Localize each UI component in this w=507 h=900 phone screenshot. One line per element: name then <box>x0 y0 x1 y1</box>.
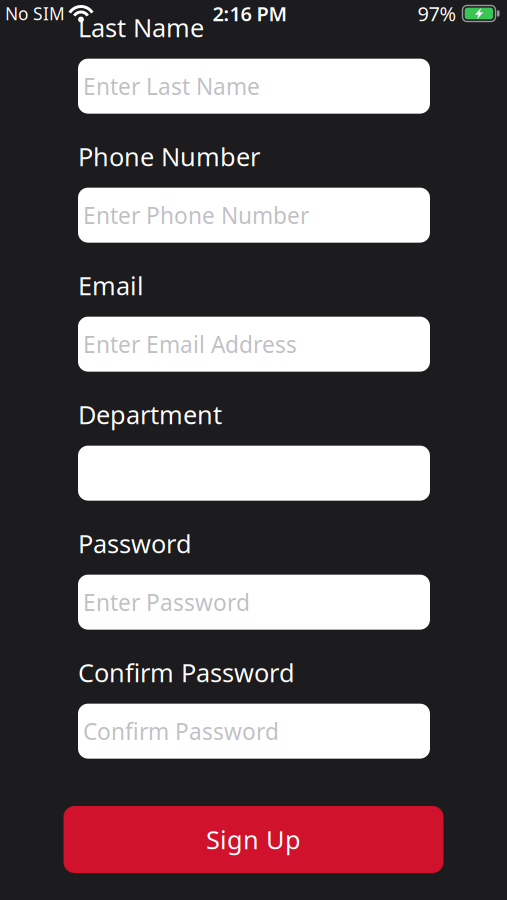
button[interactable]: Department <box>78 446 430 501</box>
staticText: Sign Up <box>206 823 301 856</box>
staticText: Phone Number <box>78 139 260 173</box>
staticText: Department <box>78 397 222 431</box>
staticText: Enter Email Address <box>83 329 297 359</box>
staticText: 97% <box>417 0 456 27</box>
staticText: Password <box>78 526 192 560</box>
button[interactable]: Sign Up <box>63 806 443 873</box>
staticText: Confirm Password <box>83 716 279 746</box>
staticText: Confirm Password <box>78 655 295 689</box>
staticText: Last Name <box>78 10 204 44</box>
staticText: Enter Last Name <box>83 71 260 101</box>
button[interactable]: Phone Number <box>78 188 430 243</box>
button[interactable]: Password <box>78 575 430 630</box>
button[interactable]: Last Name <box>78 59 430 114</box>
staticText: 2:16 PM <box>212 0 287 27</box>
button[interactable]: Email <box>78 317 430 372</box>
staticText: Enter Password <box>83 587 250 617</box>
staticText: Enter Phone Number <box>83 200 309 230</box>
staticText: No SIM <box>5 2 65 25</box>
staticText: Email <box>78 268 144 302</box>
button[interactable]: Confirm Password <box>78 704 430 759</box>
